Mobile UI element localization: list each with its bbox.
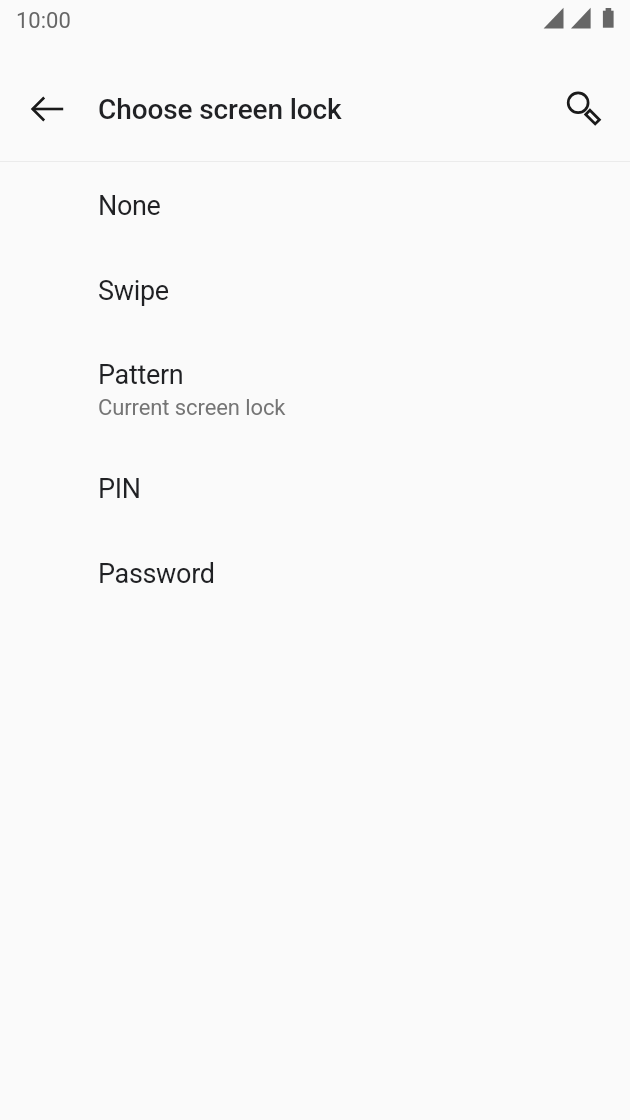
button[interactable]: None — [0, 163, 630, 248]
staticText: Current screen lock — [98, 395, 286, 421]
staticText: Choose screen lock — [98, 93, 342, 126]
staticText: Swipe — [98, 275, 169, 307]
staticText: Password — [98, 558, 215, 590]
button[interactable]: PIN — [0, 446, 630, 531]
staticText: Pattern — [98, 359, 184, 391]
button[interactable]: Navigate up — [18, 80, 78, 140]
button[interactable]: Pattern — [0, 333, 630, 446]
staticText: None — [98, 190, 161, 222]
button[interactable]: Password — [0, 531, 630, 616]
button[interactable]: Search — [549, 75, 609, 135]
staticText: 10:00 — [16, 8, 71, 34]
staticText: PIN — [98, 473, 141, 505]
button[interactable]: Swipe — [0, 248, 630, 333]
